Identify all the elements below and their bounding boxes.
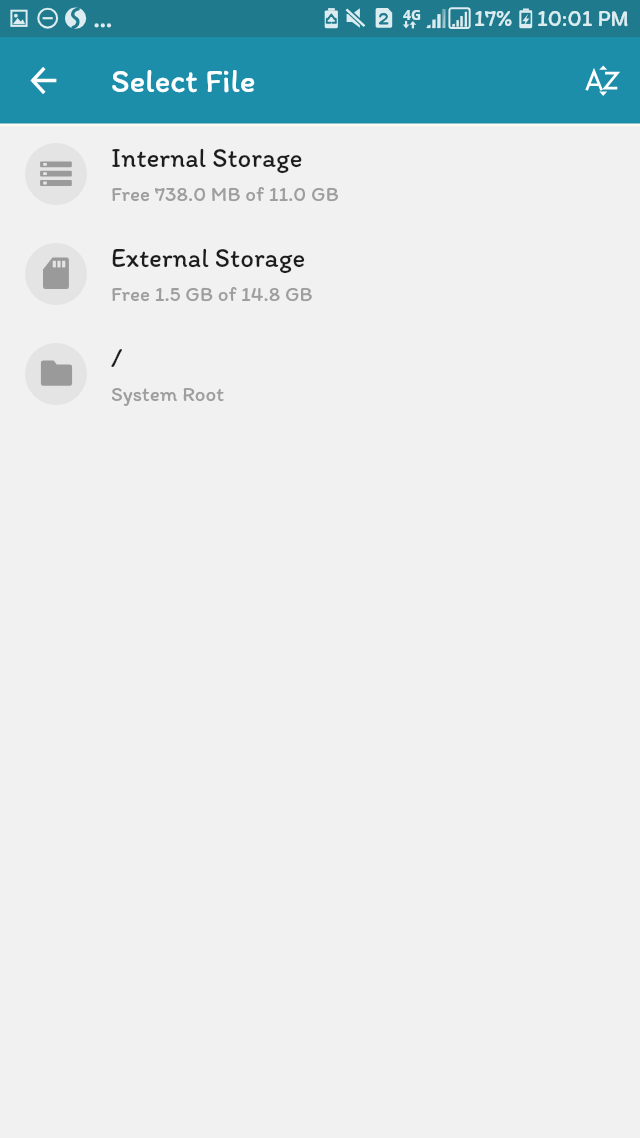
staticText: 17% (474, 4, 513, 32)
staticText: External Storage (111, 241, 306, 273)
staticText: / (111, 341, 123, 373)
staticText: 10:01 PM (537, 4, 630, 32)
button[interactable]: / (0, 324, 640, 424)
staticText: Free 1.5 GB of 14.8 GB (111, 281, 313, 306)
staticText: Internal Storage (111, 141, 303, 173)
button[interactable]: Sort by name (572, 51, 632, 111)
staticText: System Root (111, 381, 225, 406)
button[interactable]: Back (13, 50, 74, 111)
button[interactable]: Internal Storage (0, 124, 640, 224)
staticText: 4G (403, 5, 422, 24)
staticText: Select File (111, 61, 256, 101)
button[interactable]: External Storage (0, 224, 640, 324)
staticText: Free 738.0 MB of 11.0 GB (111, 181, 339, 206)
